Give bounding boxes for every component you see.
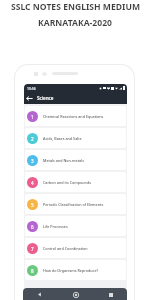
button[interactable]: Home (71, 290, 80, 299)
button[interactable]: 7 (25, 238, 126, 258)
button[interactable]: 3 (25, 150, 126, 170)
staticText: Control and Coordination (43, 246, 88, 251)
staticText: Chemical Reactions and Equations (43, 114, 104, 119)
button[interactable]: Back (25, 94, 34, 103)
button[interactable]: Back (35, 290, 44, 299)
staticText: KARNATAKA-2020 (38, 17, 112, 29)
staticText: 6 (31, 224, 34, 230)
staticText: 7 (31, 246, 34, 252)
button[interactable]: 1 (25, 106, 126, 126)
staticText: 8 (31, 268, 34, 274)
staticText: 10:56 (27, 86, 36, 91)
staticText: 1 (31, 114, 34, 120)
button[interactable]: 8 (25, 260, 126, 280)
button[interactable]: 2 (25, 128, 126, 148)
staticText: Carbon and its Compounds (43, 180, 91, 185)
staticText: SSLC NOTES ENGLISH MEDIUM (11, 1, 140, 13)
staticText: 5 (31, 202, 34, 208)
staticText: Life Processes (43, 224, 68, 229)
staticText: Acids, Bases and Salts (43, 136, 82, 141)
staticText: 2 (31, 136, 34, 142)
button[interactable]: 6 (25, 216, 126, 236)
button[interactable]: 5 (25, 194, 126, 214)
staticText: Science (37, 95, 54, 101)
button[interactable]: Recent apps (106, 290, 115, 299)
staticText: Metals and Non-metals (43, 158, 84, 163)
staticText: How do Organisms Reproduce? (43, 268, 99, 273)
staticText: Periodic Classification of Elements (43, 202, 104, 207)
staticText: 3 (31, 158, 34, 164)
button[interactable]: 4 (25, 172, 126, 192)
staticText: 4 (31, 180, 34, 186)
